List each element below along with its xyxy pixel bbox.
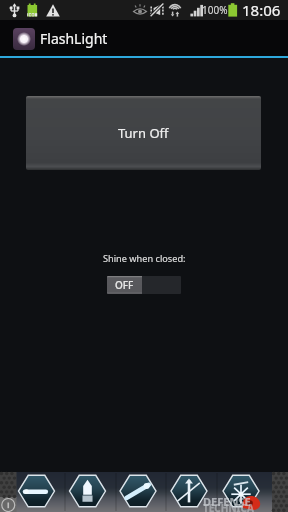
staticText: Turn Off [118,124,169,142]
staticText: TECHNICA [203,501,254,512]
staticText: FlashLight [40,29,108,48]
staticText: Shine when closed: [103,252,186,265]
staticText: OFF [115,278,134,292]
button[interactable]: Defense Technica advertisement [0,472,288,512]
staticText: DEFENSE [203,494,251,509]
button[interactable]: OFF [107,276,181,294]
staticText: 18:06 [242,0,281,20]
button[interactable]: Turn Off [26,96,261,170]
staticText: 100% [202,3,228,17]
